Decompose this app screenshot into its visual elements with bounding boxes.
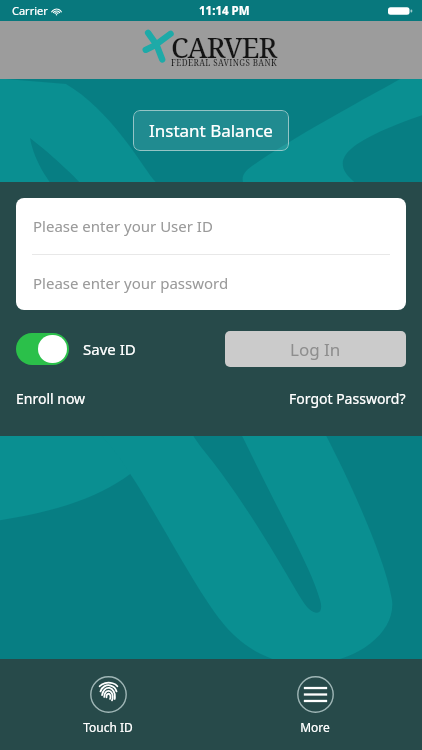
button[interactable]: More [275,668,355,735]
button[interactable]: Save ID [16,333,136,365]
button[interactable]: Log In [225,331,406,367]
staticText: Save ID [83,339,136,359]
button[interactable]: Enroll now [16,389,86,408]
staticText: Please enter your User ID [33,216,213,236]
other: Touch ID [90,676,127,713]
staticText: More [300,719,330,735]
staticText: Enroll now [16,389,86,408]
staticText: Instant Balance [149,119,273,142]
staticText: Carrier [12,3,48,18]
button[interactable]: Please enter your password [16,255,406,310]
staticText: FEDERAL SAVINGS BANK [171,57,278,68]
button[interactable]: Instant Balance [133,110,289,151]
button[interactable]: Touch ID [68,668,148,735]
staticText: 11:14 PM [199,3,250,19]
other: More [297,676,334,713]
staticText: Forgot Password? [289,389,406,408]
button[interactable]: Please enter your User ID [16,198,406,254]
staticText: Please enter your password [33,273,229,293]
button[interactable]: Forgot Password? [289,389,406,408]
staticText: Touch ID [83,719,133,735]
staticText: CARVER [171,28,277,66]
staticText: Log In [290,338,341,361]
